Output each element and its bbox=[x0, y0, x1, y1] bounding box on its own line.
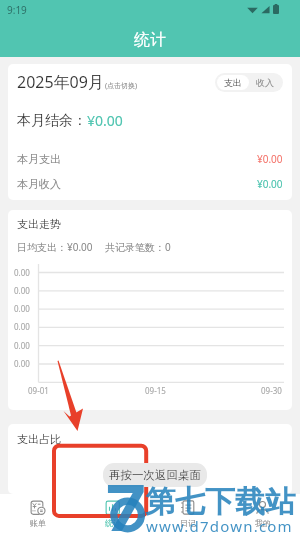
staticText: 收入 bbox=[256, 77, 274, 88]
staticText: 支出走势 bbox=[17, 217, 61, 231]
staticText: ¥0.00 bbox=[87, 111, 123, 130]
button[interactable]: 2025年09月 bbox=[17, 71, 138, 93]
staticText: 0.00 bbox=[14, 340, 30, 351]
staticText: 09-30 bbox=[261, 385, 282, 396]
staticText: 再按一次返回桌面 bbox=[109, 468, 201, 482]
staticText: 9:19 bbox=[7, 3, 27, 17]
button[interactable]: 本月收入 bbox=[8, 177, 292, 191]
staticText: 0.00 bbox=[14, 267, 30, 278]
button[interactable]: 账单 bbox=[0, 494, 75, 533]
staticText: 日均支出：¥0.00 bbox=[17, 240, 93, 254]
staticText: 09-01 bbox=[28, 385, 49, 396]
staticText: (点击切换) bbox=[105, 81, 138, 91]
staticText: 支出占比 bbox=[17, 432, 61, 446]
staticText: ¥0.00 bbox=[257, 152, 283, 166]
staticText: 0.00 bbox=[14, 321, 30, 332]
staticText: 统计 bbox=[134, 30, 166, 50]
button[interactable]: 日记 bbox=[150, 494, 225, 533]
staticText: 0.00 bbox=[14, 285, 30, 296]
staticText: 2025年09月 bbox=[17, 71, 104, 93]
staticText: 09-15 bbox=[145, 385, 166, 396]
staticText: 日记 bbox=[180, 518, 196, 528]
staticText: 支出 bbox=[224, 77, 242, 88]
staticText: 0.00 bbox=[14, 303, 30, 314]
staticText: ¥0.00 bbox=[257, 177, 283, 191]
staticText: 本月收入 bbox=[17, 177, 61, 191]
button[interactable]: 收入 bbox=[249, 75, 281, 90]
staticText: 0.00 bbox=[14, 358, 30, 369]
staticText: www.d7down.com bbox=[146, 516, 293, 533]
staticText: 共记录笔数：0 bbox=[105, 240, 171, 254]
staticText: 我的 bbox=[255, 518, 271, 528]
button[interactable]: 本月支出 bbox=[8, 152, 292, 166]
button[interactable]: 支出 bbox=[217, 75, 249, 90]
staticText: 本月支出 bbox=[17, 152, 61, 166]
button[interactable]: 我的 bbox=[225, 494, 300, 533]
staticText: 统计 bbox=[105, 518, 121, 528]
staticText: 第七下载站 bbox=[145, 483, 295, 521]
staticText: 本月结余： bbox=[17, 112, 87, 130]
button[interactable]: 统计 bbox=[75, 494, 150, 533]
staticText: 账单 bbox=[30, 518, 46, 528]
